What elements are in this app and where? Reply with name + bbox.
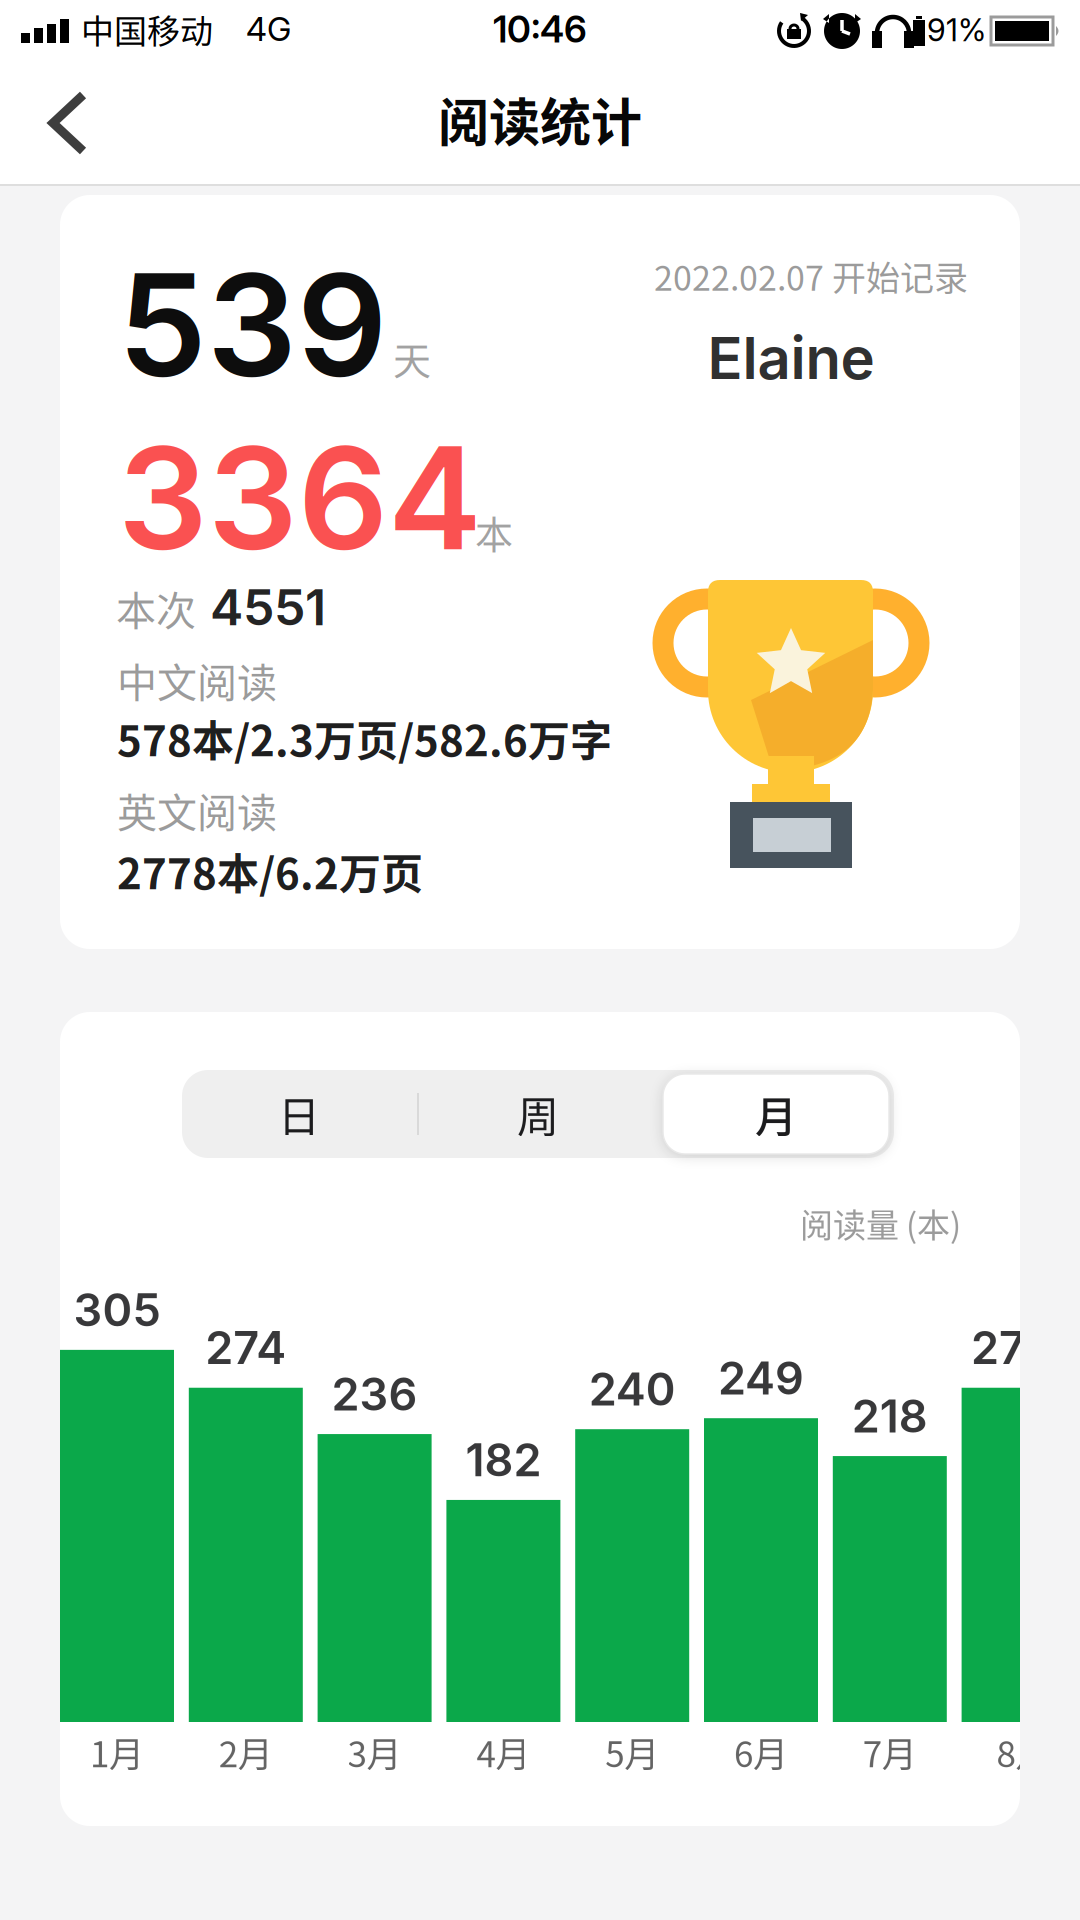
staticText: 7月 — [863, 1727, 917, 1777]
staticText: 10:46 — [493, 7, 587, 51]
staticText: 240 — [589, 1362, 676, 1416]
staticText: 月 — [755, 1084, 797, 1144]
staticText: 日 — [278, 1084, 320, 1144]
staticText: 6月 — [734, 1727, 788, 1777]
staticText: 218 — [852, 1389, 928, 1443]
staticText: 中国移动 — [81, 5, 213, 53]
staticText: Elaine — [707, 323, 874, 393]
staticText: 3月 — [348, 1727, 402, 1777]
staticText: 4G — [246, 9, 291, 49]
staticText: 本 — [475, 504, 513, 559]
staticText: 1月 — [90, 1727, 144, 1777]
staticText: 274 — [205, 1320, 286, 1375]
staticText: 274 — [971, 1320, 1052, 1375]
staticText: 249 — [718, 1351, 804, 1405]
staticText: 305 — [73, 1283, 160, 1337]
staticText: 182 — [465, 1433, 541, 1487]
staticText: 英文阅读 — [117, 781, 277, 839]
staticText: 2月 — [219, 1727, 273, 1777]
staticText: 天 — [393, 330, 431, 385]
staticText: 周 — [517, 1084, 559, 1144]
button[interactable]: 日 — [181, 1070, 417, 1158]
staticText: 8月 — [997, 1727, 1051, 1777]
button[interactable]: 周 — [420, 1070, 656, 1158]
staticText: 本次 — [116, 579, 196, 637]
staticText: 3364 — [118, 413, 482, 583]
staticText: 539 — [118, 240, 387, 410]
staticText: 阅读量 (本) — [800, 1199, 961, 1247]
staticText: 2778本/6.2万页 — [117, 841, 423, 901]
staticText: 91% — [927, 11, 986, 49]
staticText: 578本/2.3万页/582.6万字 — [117, 708, 612, 768]
button[interactable] — [21, 73, 111, 173]
staticText: 4月 — [476, 1727, 530, 1777]
staticText: 2022.02.07 开始记录 — [654, 251, 968, 301]
staticText: 4551 — [210, 577, 326, 637]
staticText: 5月 — [605, 1727, 659, 1777]
staticText: 236 — [332, 1367, 418, 1421]
button[interactable]: 月 — [658, 1070, 894, 1158]
staticText: 阅读统计 — [438, 82, 642, 156]
staticText: 中文阅读 — [117, 651, 277, 709]
